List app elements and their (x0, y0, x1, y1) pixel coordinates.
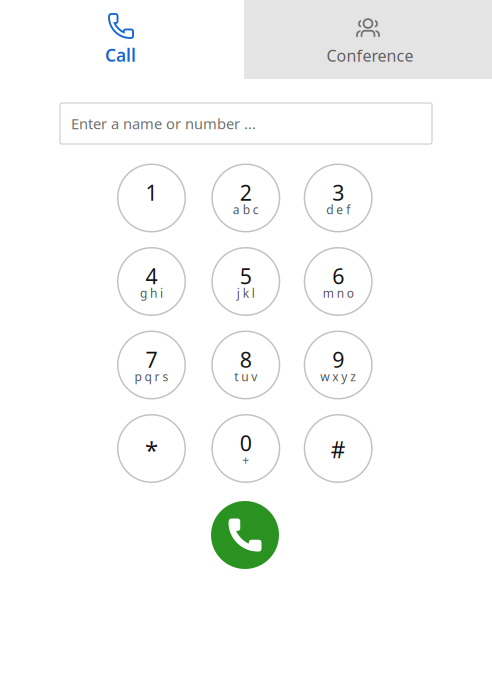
button[interactable]: 1 (117, 163, 186, 232)
staticText: # (331, 434, 346, 464)
staticText: m n o (323, 285, 354, 301)
staticText: 9 (332, 345, 344, 374)
button[interactable]: 3 (304, 163, 373, 232)
staticText: 6 (332, 262, 344, 290)
staticText: p q r s (134, 368, 168, 384)
staticText: a b c (233, 201, 259, 217)
staticText: 2 (240, 178, 252, 207)
button[interactable]: 7 (117, 330, 186, 399)
staticText: d e f (326, 201, 350, 217)
staticText: j k l (237, 285, 255, 301)
staticText: 7 (145, 345, 157, 374)
button[interactable]: 4 (117, 247, 186, 316)
staticText: 1 (145, 178, 157, 207)
staticText: Call (105, 43, 136, 66)
staticText: * (145, 434, 158, 466)
button[interactable]: 9 (304, 330, 373, 399)
staticText: + (242, 452, 249, 468)
staticText: 5 (240, 262, 252, 290)
staticText: 4 (145, 262, 157, 290)
button[interactable]: # (304, 414, 373, 483)
staticText: 8 (240, 345, 252, 374)
staticText: g h i (140, 285, 163, 301)
staticText: Conference (326, 45, 413, 66)
staticText: Enter a name or number ... (71, 114, 256, 133)
button[interactable]: 5 (211, 247, 280, 316)
button[interactable]: Conference (244, 0, 492, 79)
button[interactable]: 0 (211, 414, 280, 483)
button[interactable]: Enter a name or number ... (60, 103, 432, 144)
staticText: w x y z (320, 368, 356, 384)
button[interactable]: 8 (211, 330, 280, 399)
button[interactable]: 6 (304, 247, 373, 316)
button[interactable]: * (117, 414, 186, 483)
button[interactable]: Call (211, 501, 279, 569)
staticText: 0 (240, 429, 252, 457)
staticText: t u v (234, 368, 257, 384)
button[interactable]: Call (0, 0, 244, 79)
staticText: 3 (332, 178, 344, 207)
button[interactable]: 2 (211, 163, 280, 232)
